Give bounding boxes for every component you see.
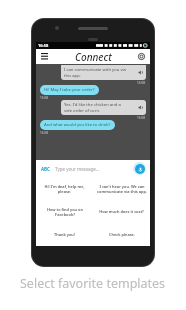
button[interactable]: Hi! I'm deaf, help me, please. bbox=[36, 177, 93, 200]
staticText: How to find you on Facebook? bbox=[47, 207, 83, 217]
staticText: 16:58 bbox=[40, 131, 49, 135]
button[interactable]: I can communicate with you via this app. bbox=[61, 65, 146, 80]
staticText: Select favorite templates bbox=[20, 275, 166, 292]
button[interactable]: Settings bbox=[137, 52, 146, 61]
staticText: 16:58 bbox=[38, 43, 49, 48]
staticText: 16:58 bbox=[137, 81, 146, 85]
button[interactable]: Hi! May I take your order? bbox=[40, 85, 99, 95]
staticText: Hi! May I take your order? bbox=[44, 87, 95, 93]
staticText: I can communicate with you via this app. bbox=[64, 67, 126, 78]
button[interactable]: Type your message... bbox=[55, 166, 133, 172]
button[interactable]: I can't hear you. We can communicate via… bbox=[93, 177, 150, 200]
staticText: Thank you! bbox=[54, 232, 75, 237]
staticText: 16:58 bbox=[40, 96, 49, 100]
staticText: Yes. I'd like the chicken and a side ord… bbox=[64, 102, 121, 113]
button[interactable]: Thank you! bbox=[36, 223, 93, 246]
staticText: How much does it cost? bbox=[99, 209, 144, 214]
staticText: And what would you like to drink? bbox=[44, 122, 111, 128]
staticText: I can't hear you. We can communicate via… bbox=[97, 184, 147, 194]
staticText: Check please. bbox=[109, 232, 135, 237]
staticText: Connect bbox=[75, 50, 112, 64]
button[interactable]: ABC bbox=[40, 165, 51, 173]
button[interactable]: Menu bbox=[40, 52, 49, 61]
staticText: Type your message... bbox=[55, 166, 100, 172]
button[interactable]: Check please. bbox=[93, 223, 150, 246]
staticText: 16:58 bbox=[137, 116, 146, 120]
button[interactable]: How much does it cost? bbox=[93, 200, 150, 223]
staticText: Hi! I'm deaf, help me, please. bbox=[44, 184, 85, 194]
button[interactable]: Yes. I'd like the chicken and a side ord… bbox=[61, 100, 146, 115]
staticText: ABC bbox=[41, 166, 50, 172]
button[interactable]: And what would you like to drink? bbox=[40, 120, 115, 130]
button[interactable]: How to find you on Facebook? bbox=[36, 200, 93, 223]
button[interactable]: Voice input bbox=[133, 162, 146, 175]
